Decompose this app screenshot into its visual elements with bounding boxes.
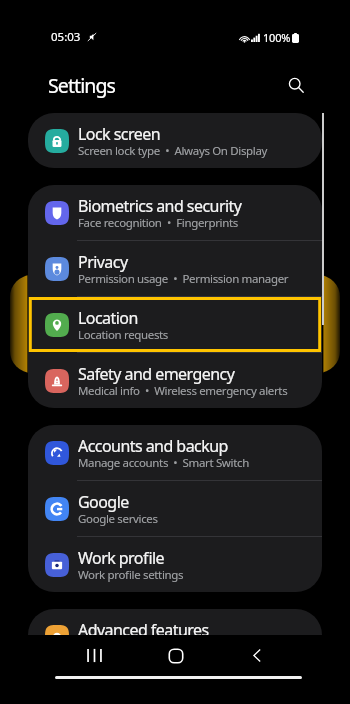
button[interactable]: Work profile — [28, 537, 322, 592]
staticText: Work profile settings — [78, 567, 184, 583]
staticText: Work profile — [78, 547, 165, 569]
button[interactable]: Home — [158, 638, 193, 673]
staticText: Face recognition • Fingerprints — [78, 215, 238, 231]
button[interactable]: Search — [278, 67, 314, 103]
button[interactable]: Accounts and backup — [28, 425, 322, 480]
staticText: Permission usage • Permission manager — [78, 271, 289, 287]
button[interactable]: Privacy — [28, 241, 322, 296]
button[interactable]: Advanced features — [28, 609, 322, 664]
staticText: 100% — [263, 30, 291, 45]
staticText: 05:03 — [51, 29, 81, 45]
staticText: Privacy — [78, 251, 128, 273]
button[interactable]: Back — [240, 638, 275, 673]
staticText: Screen lock type • Always On Display — [78, 143, 268, 159]
staticText: Advanced features — [78, 619, 209, 641]
staticText: Medical info • Wireless emergency alerts — [78, 383, 288, 399]
staticText: Google services — [78, 511, 158, 527]
staticText: Safety and emergency — [78, 363, 235, 385]
button[interactable]: Lock screen — [28, 113, 322, 168]
staticText: Location requests — [78, 327, 169, 343]
button[interactable]: Biometrics and security — [28, 185, 322, 240]
staticText: Labs • Bixby Routines — [78, 639, 191, 655]
button[interactable]: Recents — [77, 638, 112, 673]
staticText: Location — [78, 307, 138, 329]
button[interactable]: Google — [28, 481, 322, 536]
staticText: Settings — [48, 72, 115, 99]
staticText: Lock screen — [78, 123, 160, 145]
staticText: Accounts and backup — [78, 435, 228, 457]
staticText: Manage accounts • Smart Switch — [78, 455, 249, 471]
staticText: Google — [78, 491, 129, 513]
button[interactable]: Safety and emergency — [28, 353, 322, 408]
button[interactable]: Location — [28, 297, 322, 352]
staticText: Biometrics and security — [78, 195, 242, 217]
